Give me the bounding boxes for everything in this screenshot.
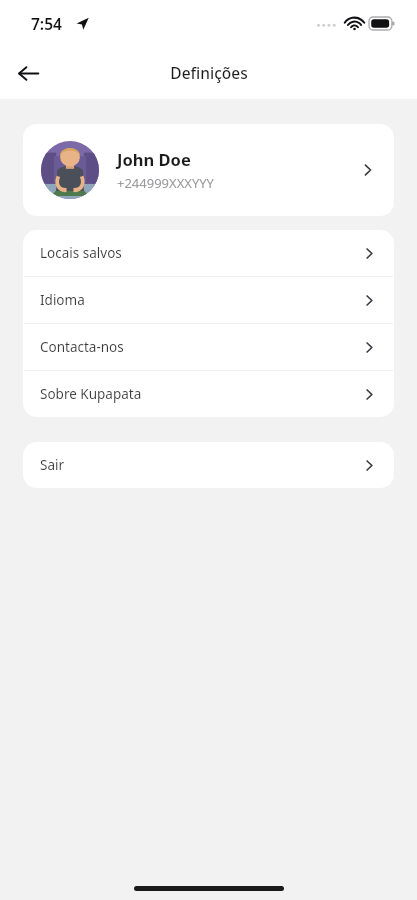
staticText: 7:54 (31, 13, 62, 34)
button[interactable]: Locais salvos (23, 230, 394, 276)
staticText: Sair (40, 456, 65, 474)
staticText: Locais salvos (40, 244, 122, 262)
button[interactable]: Sair (23, 442, 394, 488)
staticText: Definições (170, 62, 248, 83)
button[interactable]: Contacta-nos (23, 324, 394, 370)
staticText: Contacta-nos (40, 338, 124, 356)
button[interactable]: Sobre Kupapata (23, 371, 394, 417)
staticText: +244999XXXYYY (117, 174, 214, 192)
button[interactable]: Back (8, 53, 48, 93)
staticText: Sobre Kupapata (40, 385, 142, 403)
button[interactable]: Idioma (23, 277, 394, 323)
staticText: Idioma (40, 291, 85, 309)
staticText: John Doe (117, 148, 191, 170)
button[interactable]: John Doe (23, 124, 394, 216)
